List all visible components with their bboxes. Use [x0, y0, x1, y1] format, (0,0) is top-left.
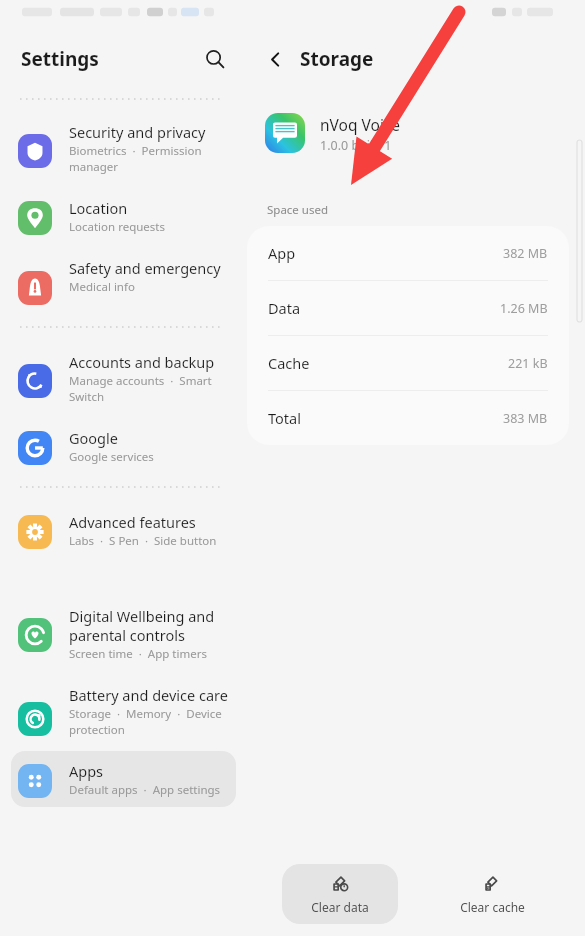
staticText: Storage · Memory · Device protection [69, 706, 228, 738]
button[interactable]: Battery and device care [11, 675, 236, 747]
staticText: Accounts and backup [69, 352, 215, 372]
staticText: Medical info [69, 279, 135, 295]
button[interactable]: Back [255, 39, 295, 79]
staticText: 383 MB [503, 410, 548, 427]
button[interactable]: Advanced features [11, 502, 236, 558]
button[interactable]: Clear cache [434, 864, 550, 924]
staticText: Screen time · App timers [69, 646, 207, 662]
button[interactable]: Total [247, 391, 569, 445]
staticText: Battery and device care [69, 685, 228, 705]
staticText: Labs · S Pen · Side button [69, 533, 217, 549]
staticText: Location [69, 198, 128, 218]
button[interactable]: Accounts and backup [11, 342, 236, 414]
staticText: Advanced features [69, 512, 196, 532]
staticText: 382 MB [503, 245, 548, 262]
button[interactable]: Search [196, 40, 234, 78]
staticText: Storage [300, 46, 374, 72]
staticText: 221 kB [508, 355, 548, 372]
button[interactable]: Apps [11, 751, 236, 807]
button[interactable]: Digital Wellbeing and parental controls [11, 596, 236, 671]
staticText: Data [268, 298, 500, 318]
staticText: Digital Wellbeing and parental controls [69, 606, 228, 645]
staticText: 1.0.0 build 1 [320, 137, 392, 154]
staticText: Biometrics · Permission manager [69, 143, 228, 175]
button[interactable]: Location [11, 188, 236, 244]
button[interactable]: Cache [247, 336, 569, 390]
button[interactable]: Google [11, 418, 236, 474]
staticText: Cache [268, 353, 508, 373]
button[interactable]: App [247, 226, 569, 280]
staticText: Google [69, 428, 118, 448]
staticText: nVoq Voice [320, 114, 401, 135]
staticText: App [268, 243, 503, 263]
button[interactable]: Data [247, 281, 569, 335]
staticText: Safety and emergency [69, 258, 221, 278]
staticText: Settings [21, 46, 99, 72]
staticText: Security and privacy [69, 122, 206, 142]
staticText: Clear cache [460, 899, 525, 915]
button[interactable]: Security and privacy [11, 112, 236, 184]
staticText: Manage accounts · Smart Switch [69, 373, 228, 405]
staticText: Apps [69, 761, 104, 781]
staticText: Google services [69, 449, 154, 465]
button[interactable]: Safety and emergency [11, 248, 236, 314]
staticText: Space used [267, 202, 329, 218]
staticText: Clear data [311, 899, 369, 915]
staticText: Total [268, 408, 503, 428]
button[interactable]: Clear data [282, 864, 398, 924]
staticText: 1.26 MB [500, 300, 548, 317]
staticText: Location requests [69, 219, 165, 235]
staticText: Default apps · App settings [69, 782, 221, 798]
